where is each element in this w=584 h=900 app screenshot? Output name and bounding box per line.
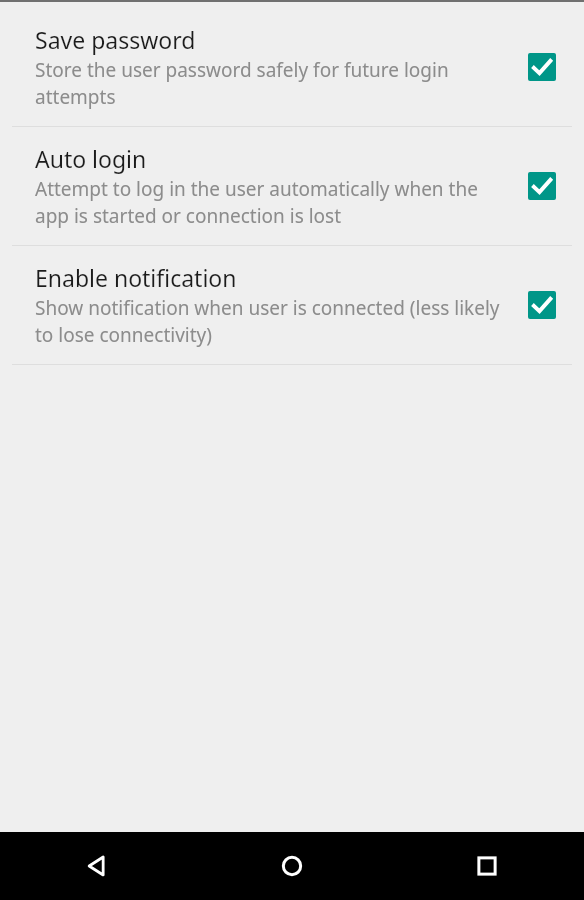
button[interactable]: Enable notification (518, 281, 566, 329)
staticText: Show notification when user is connected… (35, 295, 512, 348)
button[interactable]: Enable notification (0, 246, 584, 364)
staticText: Auto login (35, 143, 147, 174)
button[interactable]: Home (194, 832, 389, 900)
button[interactable]: Save password (518, 43, 566, 91)
staticText: Attempt to log in the user automatically… (35, 176, 512, 229)
staticText: Save password (35, 24, 196, 55)
button[interactable]: Back (0, 832, 194, 900)
staticText: Enable notification (35, 262, 237, 293)
button[interactable]: Auto login (0, 127, 584, 245)
button[interactable]: Auto login (518, 162, 566, 210)
button[interactable]: Recent apps (389, 832, 584, 900)
staticText: Store the user password safely for futur… (35, 57, 512, 110)
button[interactable]: Save password (0, 8, 584, 126)
